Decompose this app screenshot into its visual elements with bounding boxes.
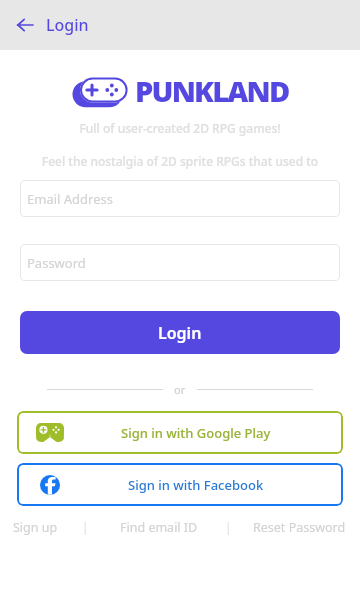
button[interactable]: Sign up: [0, 516, 70, 538]
button[interactable]: Reset Password: [238, 516, 360, 538]
button[interactable]: Password: [20, 244, 340, 281]
staticText: |: [225, 519, 232, 535]
button[interactable]: Find email ID: [100, 516, 218, 538]
staticText: |: [82, 519, 89, 535]
staticText: Sign in with Google Play: [121, 424, 271, 442]
staticText: Sign in with Facebook: [128, 476, 264, 494]
staticText: Full of user-created 2D RPG games!: [0, 120, 360, 136]
staticText: Sign up: [13, 519, 58, 536]
staticText: Reset Password: [253, 519, 346, 536]
staticText: Login: [46, 14, 89, 36]
staticText: or: [174, 382, 186, 397]
staticText: PUNKLAND: [135, 71, 289, 110]
staticText: Feel the nostalgia of 2D sprite RPGs tha…: [0, 153, 360, 169]
staticText: Find email ID: [120, 519, 198, 536]
button[interactable]: Sign in with Facebook: [17, 463, 343, 506]
staticText: Password: [27, 254, 86, 272]
staticText: Login: [158, 322, 202, 344]
button[interactable]: Login: [20, 311, 340, 354]
staticText: Email Address: [27, 190, 113, 208]
button[interactable]: Back: [10, 10, 40, 40]
button[interactable]: Email Address: [20, 180, 340, 217]
button[interactable]: Sign in with Google Play: [17, 411, 343, 454]
